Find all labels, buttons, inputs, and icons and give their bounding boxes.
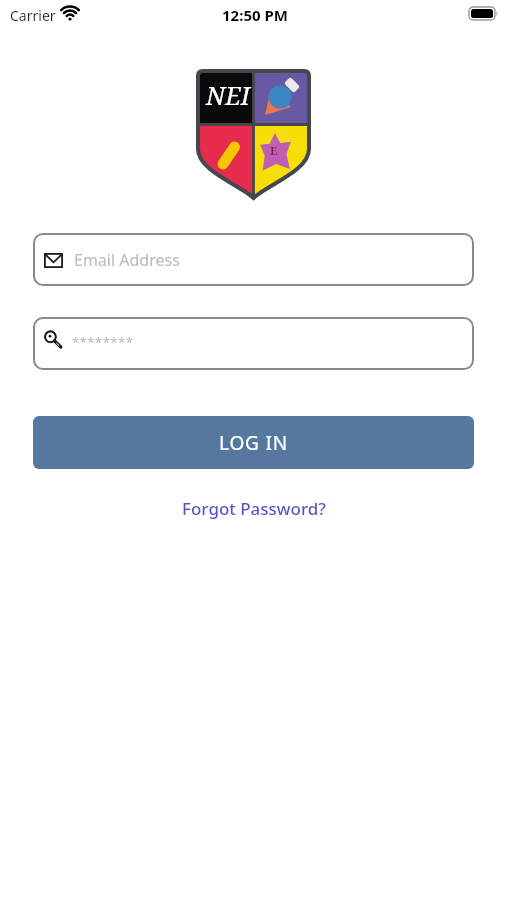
staticText: Carrier: [10, 6, 56, 25]
staticText: E: [270, 143, 278, 158]
staticText: 12:50 PM: [222, 5, 288, 25]
button[interactable]: Forgot Password?: [182, 497, 326, 520]
staticText: NEI: [205, 78, 251, 112]
button[interactable]: LOG IN: [33, 416, 474, 469]
button[interactable]: ********: [33, 317, 474, 370]
staticText: Email Address: [74, 249, 180, 271]
staticText: LOG IN: [219, 430, 288, 456]
button[interactable]: Email Address: [33, 233, 474, 286]
staticText: ********: [72, 333, 134, 351]
